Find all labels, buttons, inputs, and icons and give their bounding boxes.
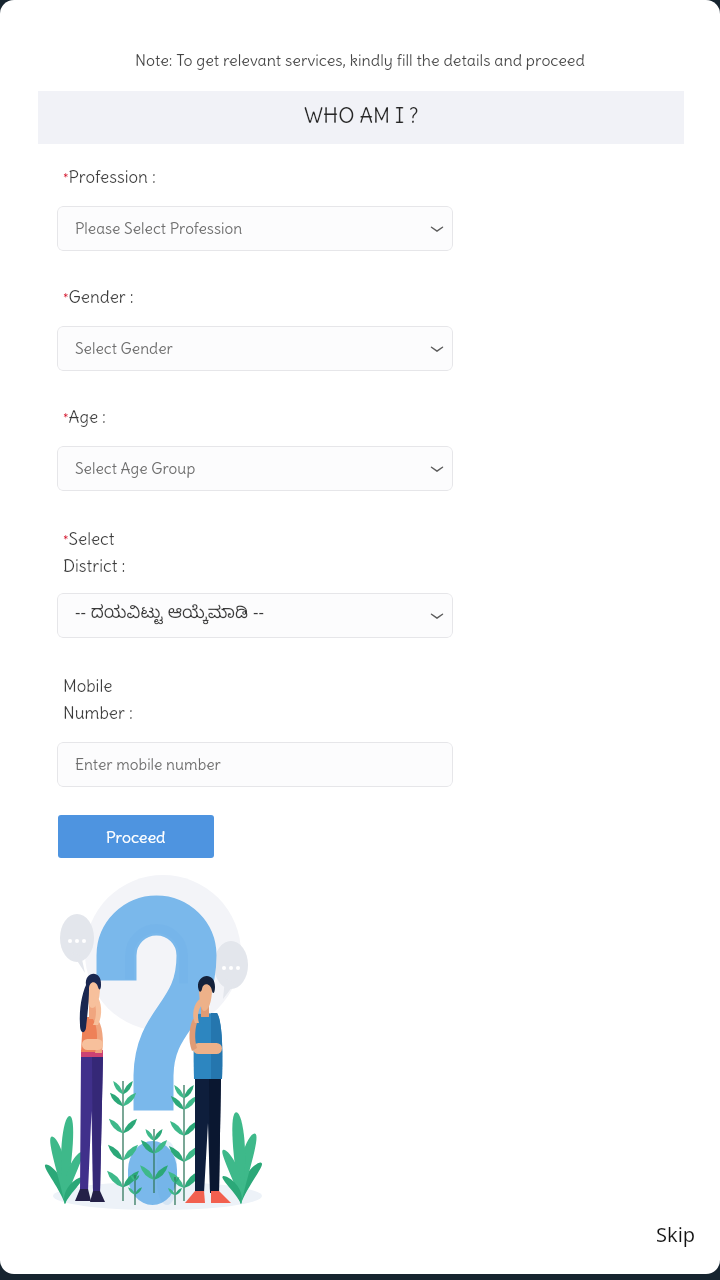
button[interactable]: Select Age Group: [57, 446, 453, 491]
button[interactable]: -- ದಯವಿಟ್ಟು ಆಯ್ಕೆಮಾಡಿ --: [57, 593, 453, 638]
staticText: *Age :: [63, 406, 106, 427]
button[interactable]: Enter mobile number: [57, 742, 453, 787]
staticText: Select Age Group: [75, 459, 196, 478]
staticText: Mobile: [63, 675, 113, 696]
staticText: Please Select Profession: [75, 219, 243, 238]
staticText: WHO AM I ?: [304, 102, 419, 128]
other: Open dropdown: [426, 338, 448, 360]
other: Open dropdown: [426, 218, 448, 240]
button[interactable]: Select Gender: [57, 326, 453, 371]
other: Open dropdown: [426, 605, 448, 627]
other: Open dropdown: [426, 458, 448, 480]
staticText: -- ದಯವಿಟ್ಟು ಆಯ್ಕೆಮಾಡಿ --: [75, 604, 264, 627]
staticText: Proceed: [106, 827, 166, 847]
button[interactable]: Skip: [656, 1221, 696, 1248]
staticText: Note: To get relevant services, kindly f…: [0, 50, 720, 70]
button[interactable]: Proceed: [58, 815, 214, 858]
button[interactable]: Please Select Profession: [57, 206, 453, 251]
staticText: District :: [63, 555, 126, 576]
staticText: Number :: [63, 702, 133, 723]
staticText: *Gender :: [63, 286, 134, 307]
staticText: *Select: [63, 528, 115, 549]
staticText: *Profession :: [63, 166, 156, 187]
staticText: Enter mobile number: [75, 755, 221, 774]
staticText: Select Gender: [75, 339, 173, 358]
